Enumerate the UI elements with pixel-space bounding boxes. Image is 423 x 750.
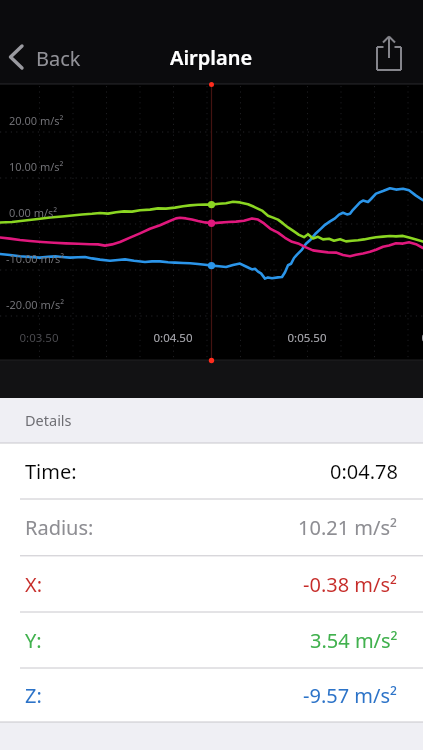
staticText: Radius: <box>25 514 94 541</box>
staticText: Airplane <box>170 44 253 71</box>
staticText: 0:05.50 <box>287 330 327 346</box>
staticText: 0:04.78 <box>330 458 398 485</box>
staticText: 0:06.50 <box>421 330 423 346</box>
staticText: -10.00 m/s² <box>6 251 65 266</box>
staticText: Back <box>36 45 81 72</box>
staticText: 3.54 m/s² <box>310 627 398 654</box>
button[interactable]: X: <box>25 556 398 612</box>
button[interactable]: Time: <box>25 443 398 499</box>
button[interactable]: Z: <box>25 668 398 722</box>
button[interactable] <box>366 32 414 76</box>
button[interactable]: Back <box>6 38 98 78</box>
staticText: -0.38 m/s² <box>303 571 398 598</box>
staticText: Time: <box>25 458 77 485</box>
staticText: -9.57 m/s² <box>303 682 398 709</box>
staticText: 0.00 m/s² <box>9 205 58 220</box>
staticText: Y: <box>25 627 42 654</box>
staticText: 0:03.50 <box>19 330 59 346</box>
staticText: -20.00 m/s² <box>6 297 65 312</box>
staticText: 10.00 m/s² <box>9 159 64 174</box>
staticText: X: <box>25 571 43 598</box>
staticText: 20.00 m/s² <box>9 113 64 128</box>
staticText: Z: <box>25 682 42 709</box>
button[interactable]: Radius: <box>25 499 398 556</box>
staticText: 10.21 m/s² <box>298 514 398 541</box>
staticText: Details <box>25 410 72 430</box>
button[interactable]: Y: <box>25 612 398 668</box>
staticText: 0:04.50 <box>153 330 193 346</box>
